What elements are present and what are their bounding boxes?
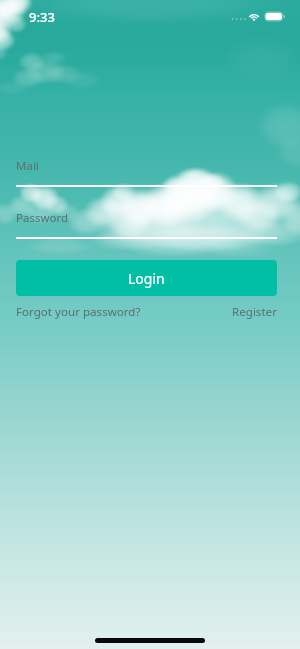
staticText: Mail — [16, 158, 39, 174]
button[interactable]: Forgot your password? — [16, 304, 141, 320]
button[interactable]: Register — [232, 304, 277, 320]
button[interactable]: Password — [16, 210, 277, 239]
staticText: Password — [16, 210, 69, 226]
button[interactable]: Login — [16, 260, 277, 296]
staticText: Login — [128, 269, 165, 288]
staticText: 9:33 — [29, 8, 55, 26]
staticText: Register — [232, 304, 277, 320]
staticText: Forgot your password? — [16, 304, 141, 320]
button[interactable]: Mail — [16, 158, 277, 187]
